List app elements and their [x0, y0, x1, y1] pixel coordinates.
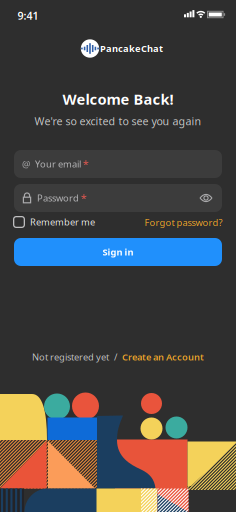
button[interactable]: Password — [14, 184, 222, 212]
staticText: @ — [22, 158, 30, 170]
button[interactable]: @ — [14, 150, 222, 178]
staticText: * — [81, 191, 87, 205]
staticText: PancakeChat — [100, 42, 163, 54]
staticText: Password — [37, 192, 79, 204]
button[interactable]: Sign in — [14, 238, 222, 266]
staticText: Welcome Back! — [62, 89, 173, 109]
staticText: We're so excited to see you again — [34, 114, 201, 128]
button[interactable]: Create an Account — [122, 351, 204, 363]
staticText: Forgot password? — [144, 216, 222, 229]
staticText: Remember me — [30, 216, 95, 228]
staticText: / — [114, 351, 117, 363]
button[interactable]: Remember me — [13, 216, 95, 228]
staticText: Not registered yet — [32, 351, 109, 363]
button[interactable]: Forgot password? — [144, 216, 222, 229]
staticText: Sign in — [102, 246, 133, 258]
staticText: Your email — [35, 158, 81, 170]
staticText: 9:41 — [17, 8, 38, 23]
staticText: Create an Account — [122, 351, 204, 363]
staticText: * — [83, 157, 89, 171]
